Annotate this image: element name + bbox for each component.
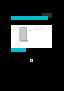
button[interactable]: Logo (30, 59, 33, 62)
